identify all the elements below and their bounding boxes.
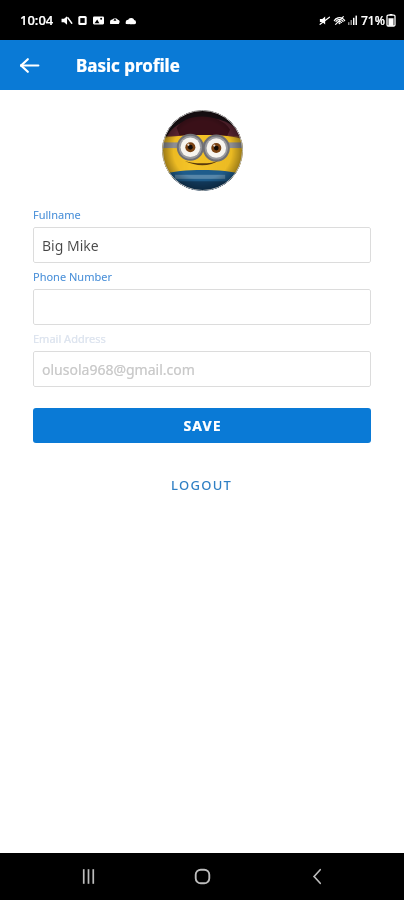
button[interactable]: Profile photo — [162, 110, 243, 191]
button[interactable]: Back — [290, 853, 344, 900]
staticText: LOGOUT — [171, 476, 233, 494]
staticText: Phone Number — [33, 269, 404, 284]
button[interactable]: Home — [175, 853, 229, 900]
button[interactable]: SAVE — [33, 408, 371, 443]
staticText: SAVE — [183, 416, 222, 435]
button[interactable]: Big Mike — [33, 227, 371, 263]
staticText: 10:04 — [20, 11, 54, 29]
button[interactable] — [33, 289, 371, 325]
button[interactable]: Recent apps — [61, 853, 115, 900]
staticText: Fullname — [33, 207, 404, 222]
button[interactable]: Back — [10, 46, 48, 84]
button[interactable]: olusola968@gmail.com — [33, 351, 371, 387]
staticText: Big Mike — [42, 236, 99, 255]
staticText: Email Address — [33, 331, 404, 346]
staticText: olusola968@gmail.com — [42, 360, 195, 379]
staticText: 71% — [361, 12, 385, 28]
button[interactable]: LOGOUT — [157, 469, 247, 501]
staticText: Basic profile — [76, 54, 180, 77]
